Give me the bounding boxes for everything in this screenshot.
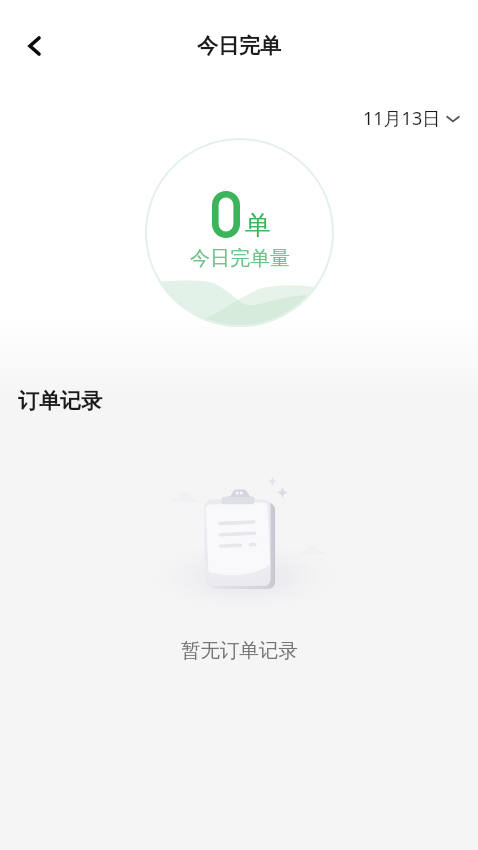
staticText: 今日完单 (197, 33, 281, 59)
staticText: 今日完单量 (190, 246, 290, 271)
staticText: 11月13日 (363, 106, 441, 131)
staticText: 单 (245, 209, 271, 242)
button[interactable]: 11月13日 (363, 106, 460, 131)
button[interactable]: Back (8, 20, 60, 72)
staticText: 订单记录 (18, 388, 102, 414)
staticText: 暂无订单记录 (181, 638, 298, 663)
